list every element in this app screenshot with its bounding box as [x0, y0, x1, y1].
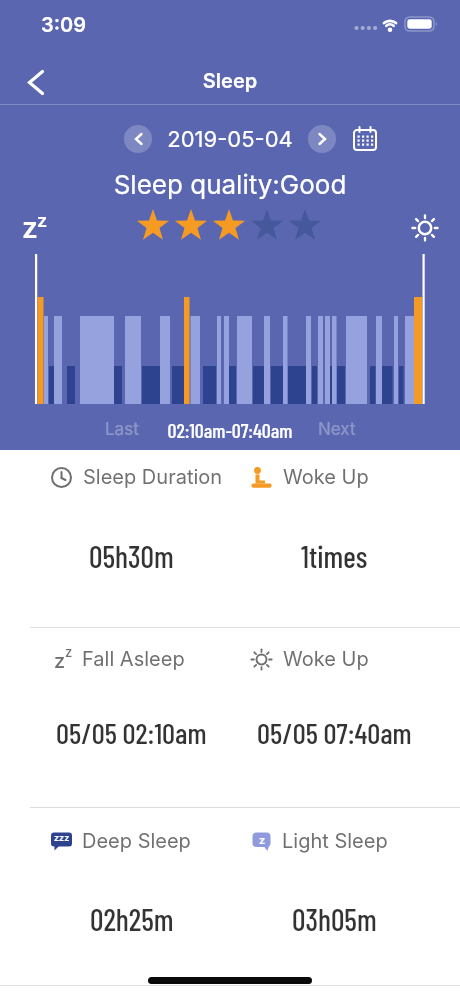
staticText: Woke Up	[283, 647, 369, 671]
staticText: 05h30m	[89, 538, 174, 574]
staticText: Light Sleep	[282, 829, 388, 853]
staticText: z	[22, 211, 38, 245]
staticText: Last	[105, 419, 139, 440]
button[interactable]	[308, 125, 336, 153]
staticText: 02h25m	[90, 901, 174, 937]
button[interactable]	[124, 125, 152, 153]
staticText: Next	[318, 419, 356, 440]
staticText: Sleep quality:Good	[0, 169, 460, 200]
button[interactable]	[352, 126, 378, 152]
staticText: 03h05m	[292, 901, 377, 937]
staticText: 05/05 02:10am	[56, 715, 207, 750]
staticText: zzz	[54, 832, 70, 843]
button[interactable]: Next	[318, 419, 356, 440]
staticText: 02:10am-07:40am	[0, 418, 460, 442]
staticText: Sleep Duration	[83, 465, 223, 489]
staticText: 3:09	[41, 13, 87, 37]
staticText: 2019-05-04	[0, 126, 460, 153]
button[interactable]	[16, 62, 56, 102]
staticText: Woke Up	[283, 465, 369, 489]
staticText: 1times	[301, 538, 368, 574]
staticText: Fall Asleep	[82, 647, 185, 671]
staticText: z	[259, 833, 266, 846]
staticText: 05/05 07:40am	[257, 715, 412, 750]
staticText: Deep Sleep	[82, 829, 191, 853]
staticText: Sleep	[0, 69, 460, 93]
staticText: z	[54, 649, 66, 673]
staticText: z	[37, 210, 48, 232]
button[interactable]: Last	[105, 419, 139, 440]
staticText: z	[65, 644, 73, 660]
